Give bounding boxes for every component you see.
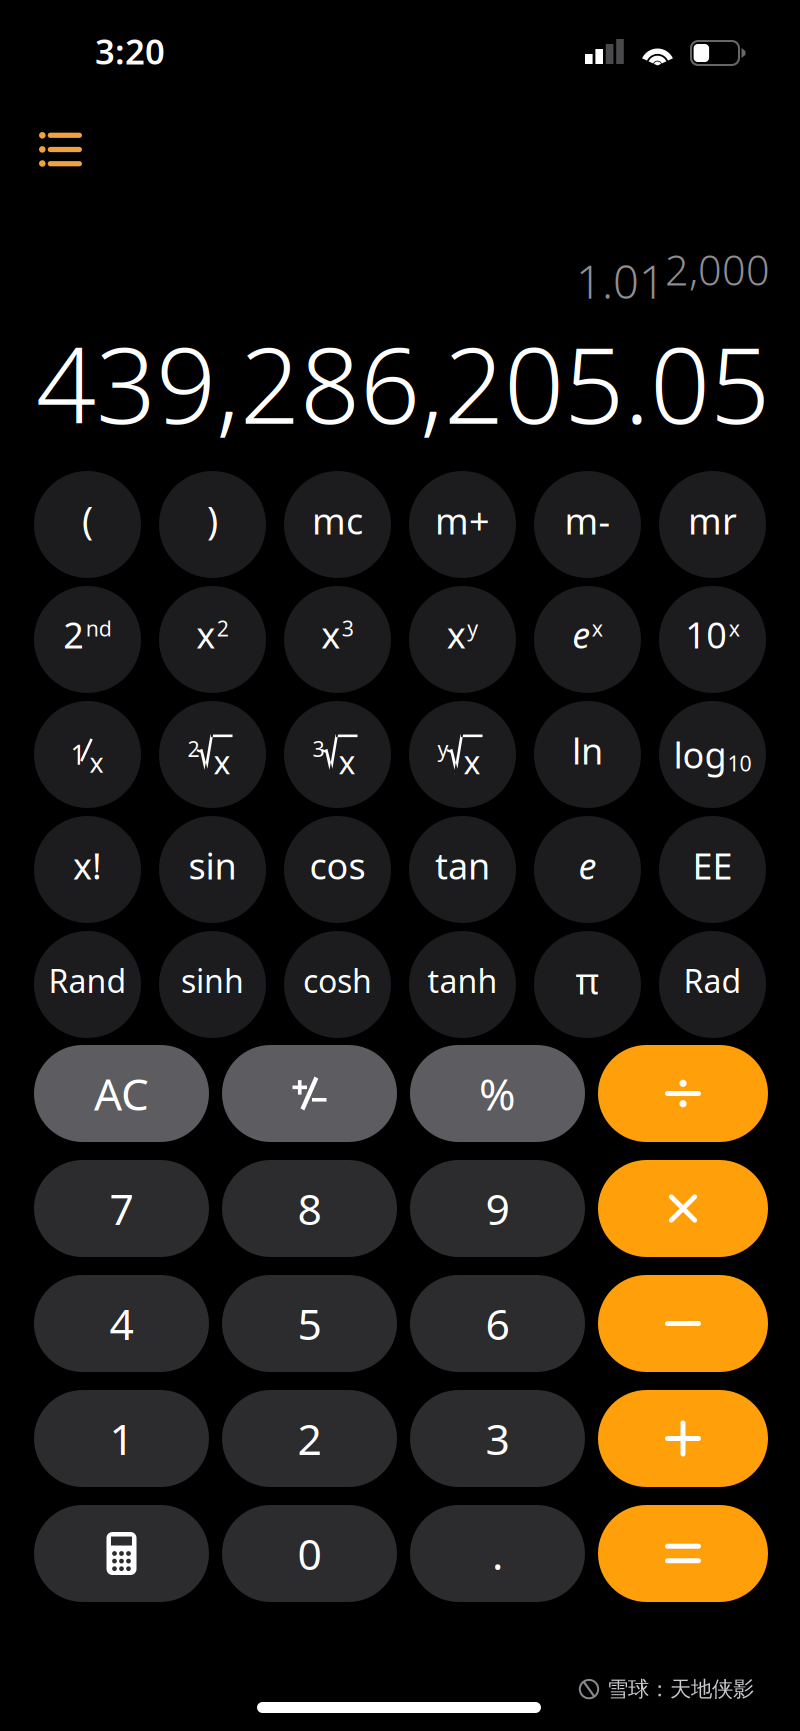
- button[interactable]: Rand: [34, 931, 141, 1038]
- staticText: EE: [692, 842, 732, 889]
- staticText: 3: [342, 614, 354, 642]
- staticText: x: [592, 614, 603, 642]
- button[interactable]: %: [410, 1045, 585, 1142]
- button[interactable]: close parenthesis: [159, 471, 266, 578]
- staticText: x: [196, 611, 215, 658]
- button[interactable]: π: [534, 931, 641, 1038]
- staticText: m+: [435, 497, 490, 544]
- staticText: 8: [297, 1180, 321, 1237]
- staticText: 4: [109, 1295, 133, 1352]
- button[interactable]: m+: [409, 471, 516, 578]
- button[interactable]: 2: [222, 1390, 397, 1487]
- button[interactable]: log base 10: [659, 701, 766, 808]
- staticText: Rand: [48, 959, 126, 1002]
- button[interactable]: 9: [410, 1160, 585, 1257]
- button[interactable]: AC: [34, 1045, 209, 1142]
- button[interactable]: cosh: [284, 931, 391, 1038]
- staticText: 9: [485, 1180, 509, 1237]
- staticText: tanh: [427, 959, 497, 1002]
- button[interactable]: e: [534, 816, 641, 923]
- button[interactable]: Calculator mode: [34, 1505, 209, 1602]
- staticText: 1: [109, 1410, 133, 1467]
- button[interactable]: EE: [659, 816, 766, 923]
- staticText: ln: [572, 727, 603, 774]
- staticText: 10: [727, 749, 751, 777]
- staticText: e: [572, 611, 590, 658]
- button[interactable]: x cubed: [284, 586, 391, 693]
- button[interactable]: 3: [410, 1390, 585, 1487]
- button[interactable]: tanh: [409, 931, 516, 1038]
- button[interactable]: 5: [222, 1275, 397, 1372]
- button[interactable]: e to the power x: [534, 586, 641, 693]
- button[interactable]: x squared: [159, 586, 266, 693]
- button[interactable]: 1: [34, 1390, 209, 1487]
- button[interactable]: cos: [284, 816, 391, 923]
- button[interactable]: tan: [409, 816, 516, 923]
- staticText: 2: [187, 734, 199, 763]
- staticText: 雪球：天地侠影: [607, 1676, 754, 1702]
- staticText: x: [338, 740, 355, 783]
- button[interactable]: y-th root of x: [409, 701, 516, 808]
- staticText: 6: [485, 1295, 509, 1352]
- button[interactable]: open parenthesis: [34, 471, 141, 578]
- staticText: π: [575, 957, 599, 1004]
- staticText: AC: [94, 1064, 149, 1123]
- staticText: 7: [109, 1180, 133, 1237]
- staticText: Rad: [683, 959, 741, 1002]
- button[interactable]: square root of x: [159, 701, 266, 808]
- staticText: m-: [564, 497, 610, 544]
- staticText: x: [321, 611, 340, 658]
- staticText: 1.01: [576, 251, 665, 311]
- button[interactable]: m-: [534, 471, 641, 578]
- staticText: tan: [435, 842, 490, 889]
- button[interactable]: plus or minus: [222, 1045, 397, 1142]
- button[interactable]: Rad: [659, 931, 766, 1038]
- staticText: mc: [312, 497, 363, 544]
- button[interactable]: x!: [34, 816, 141, 923]
- button[interactable]: 6: [410, 1275, 585, 1372]
- staticText: 2,000: [665, 242, 770, 297]
- button[interactable]: multiply: [598, 1160, 768, 1257]
- button[interactable]: sinh: [159, 931, 266, 1038]
- button[interactable]: History: [23, 116, 98, 184]
- button[interactable]: .: [410, 1505, 585, 1602]
- staticText: x: [463, 740, 480, 783]
- staticText: e: [578, 842, 596, 889]
- button[interactable]: 0: [222, 1505, 397, 1602]
- staticText: x: [89, 745, 103, 780]
- staticText: x: [213, 740, 230, 783]
- staticText: x: [729, 614, 740, 642]
- button[interactable]: ln: [534, 701, 641, 808]
- staticText: mr: [688, 497, 737, 544]
- button[interactable]: x to the power y: [409, 586, 516, 693]
- staticText: sin: [188, 842, 236, 889]
- button[interactable]: minus: [598, 1275, 768, 1372]
- staticText: x!: [73, 842, 102, 889]
- staticText: %: [479, 1064, 516, 1123]
- staticText: 0: [297, 1525, 321, 1582]
- staticText: log: [673, 731, 726, 778]
- button[interactable]: 10 to the power x: [659, 586, 766, 693]
- button[interactable]: plus: [598, 1390, 768, 1487]
- staticText: 2: [217, 614, 229, 642]
- button[interactable]: mr: [659, 471, 766, 578]
- button[interactable]: cube root of x: [284, 701, 391, 808]
- button[interactable]: one over x: [34, 701, 141, 808]
- button[interactable]: equals: [598, 1505, 768, 1602]
- button[interactable]: 4: [34, 1275, 209, 1372]
- staticText: ): [207, 495, 218, 544]
- button[interactable]: 8: [222, 1160, 397, 1257]
- button[interactable]: divide: [598, 1045, 768, 1142]
- staticText: 439,286,205.05: [36, 313, 770, 453]
- button[interactable]: mc: [284, 471, 391, 578]
- button[interactable]: 2nd: [34, 586, 141, 693]
- staticText: sinh: [181, 959, 244, 1002]
- button[interactable]: sin: [159, 816, 266, 923]
- staticText: 3: [485, 1410, 509, 1467]
- button[interactable]: 7: [34, 1160, 209, 1257]
- staticText: 2: [297, 1410, 321, 1467]
- staticText: x: [447, 611, 466, 658]
- staticText: cos: [309, 842, 365, 889]
- staticText: 3:20: [95, 28, 165, 74]
- staticText: y: [437, 734, 448, 763]
